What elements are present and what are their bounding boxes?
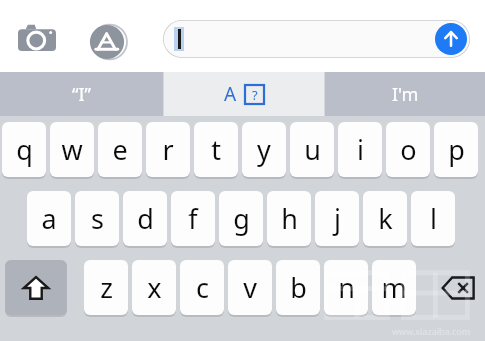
button[interactable]: j [315, 191, 359, 246]
staticText: A [224, 81, 237, 107]
button[interactable]: I'm [325, 72, 485, 116]
staticText: u [304, 131, 321, 168]
button[interactable]: n [324, 260, 368, 315]
staticText: n [338, 269, 355, 306]
button[interactable]: t [194, 122, 238, 177]
staticText: t [211, 131, 221, 168]
staticText: v [243, 269, 257, 306]
staticText: o [400, 131, 417, 168]
button[interactable]: z [84, 260, 128, 315]
button[interactable]: x [132, 260, 176, 315]
button[interactable]: v [228, 260, 272, 315]
button[interactable]: h [267, 191, 311, 246]
staticText: I'm [392, 82, 419, 107]
button[interactable]: k [363, 191, 407, 246]
staticText: g [233, 200, 250, 237]
button[interactable]: o [386, 122, 430, 177]
staticText: h [281, 200, 298, 237]
button[interactable]: y [242, 122, 286, 177]
staticText: ? [252, 86, 258, 104]
button[interactable]: Send [163, 20, 470, 58]
staticText: i [357, 131, 364, 168]
button[interactable]: b [276, 260, 320, 315]
button[interactable]: p [434, 122, 478, 177]
staticText: r [162, 131, 174, 168]
button[interactable]: g [219, 191, 263, 246]
button[interactable]: s [75, 191, 119, 246]
staticText: q [16, 131, 33, 168]
staticText: m [381, 269, 407, 306]
staticText: x [147, 269, 162, 306]
button[interactable]: r [146, 122, 190, 177]
button[interactable]: A [164, 72, 324, 116]
button[interactable]: a [27, 191, 71, 246]
button[interactable]: Camera [16, 21, 58, 53]
button[interactable]: c [180, 260, 224, 315]
staticText: b [290, 269, 307, 306]
staticText: y [257, 131, 271, 168]
staticText: w [61, 131, 83, 168]
button[interactable]: Send [435, 23, 467, 55]
button[interactable]: f [171, 191, 215, 246]
button[interactable]: l [411, 191, 455, 246]
button[interactable]: i [338, 122, 382, 177]
staticText: p [448, 131, 465, 168]
button[interactable]: Shift [5, 260, 67, 315]
button[interactable]: App Store [85, 20, 129, 64]
staticText: z [100, 269, 113, 306]
button[interactable]: m [372, 260, 416, 315]
staticText: s [91, 200, 104, 237]
button[interactable]: “I” [0, 72, 163, 116]
button[interactable]: q [2, 122, 46, 177]
staticText: k [378, 200, 393, 237]
button[interactable]: e [98, 122, 142, 177]
staticText: c [196, 269, 209, 306]
staticText: a [41, 200, 57, 237]
staticText: www.xiazaiba.com [392, 325, 471, 337]
button[interactable]: d [123, 191, 167, 246]
staticText: d [137, 200, 154, 237]
button[interactable]: u [290, 122, 334, 177]
staticText: j [334, 200, 341, 237]
staticText: f [188, 200, 198, 237]
button[interactable]: Backspace [433, 260, 485, 315]
button[interactable]: w [50, 122, 94, 177]
staticText: e [112, 131, 128, 168]
staticText: l [430, 200, 437, 237]
staticText: “I” [72, 82, 92, 107]
